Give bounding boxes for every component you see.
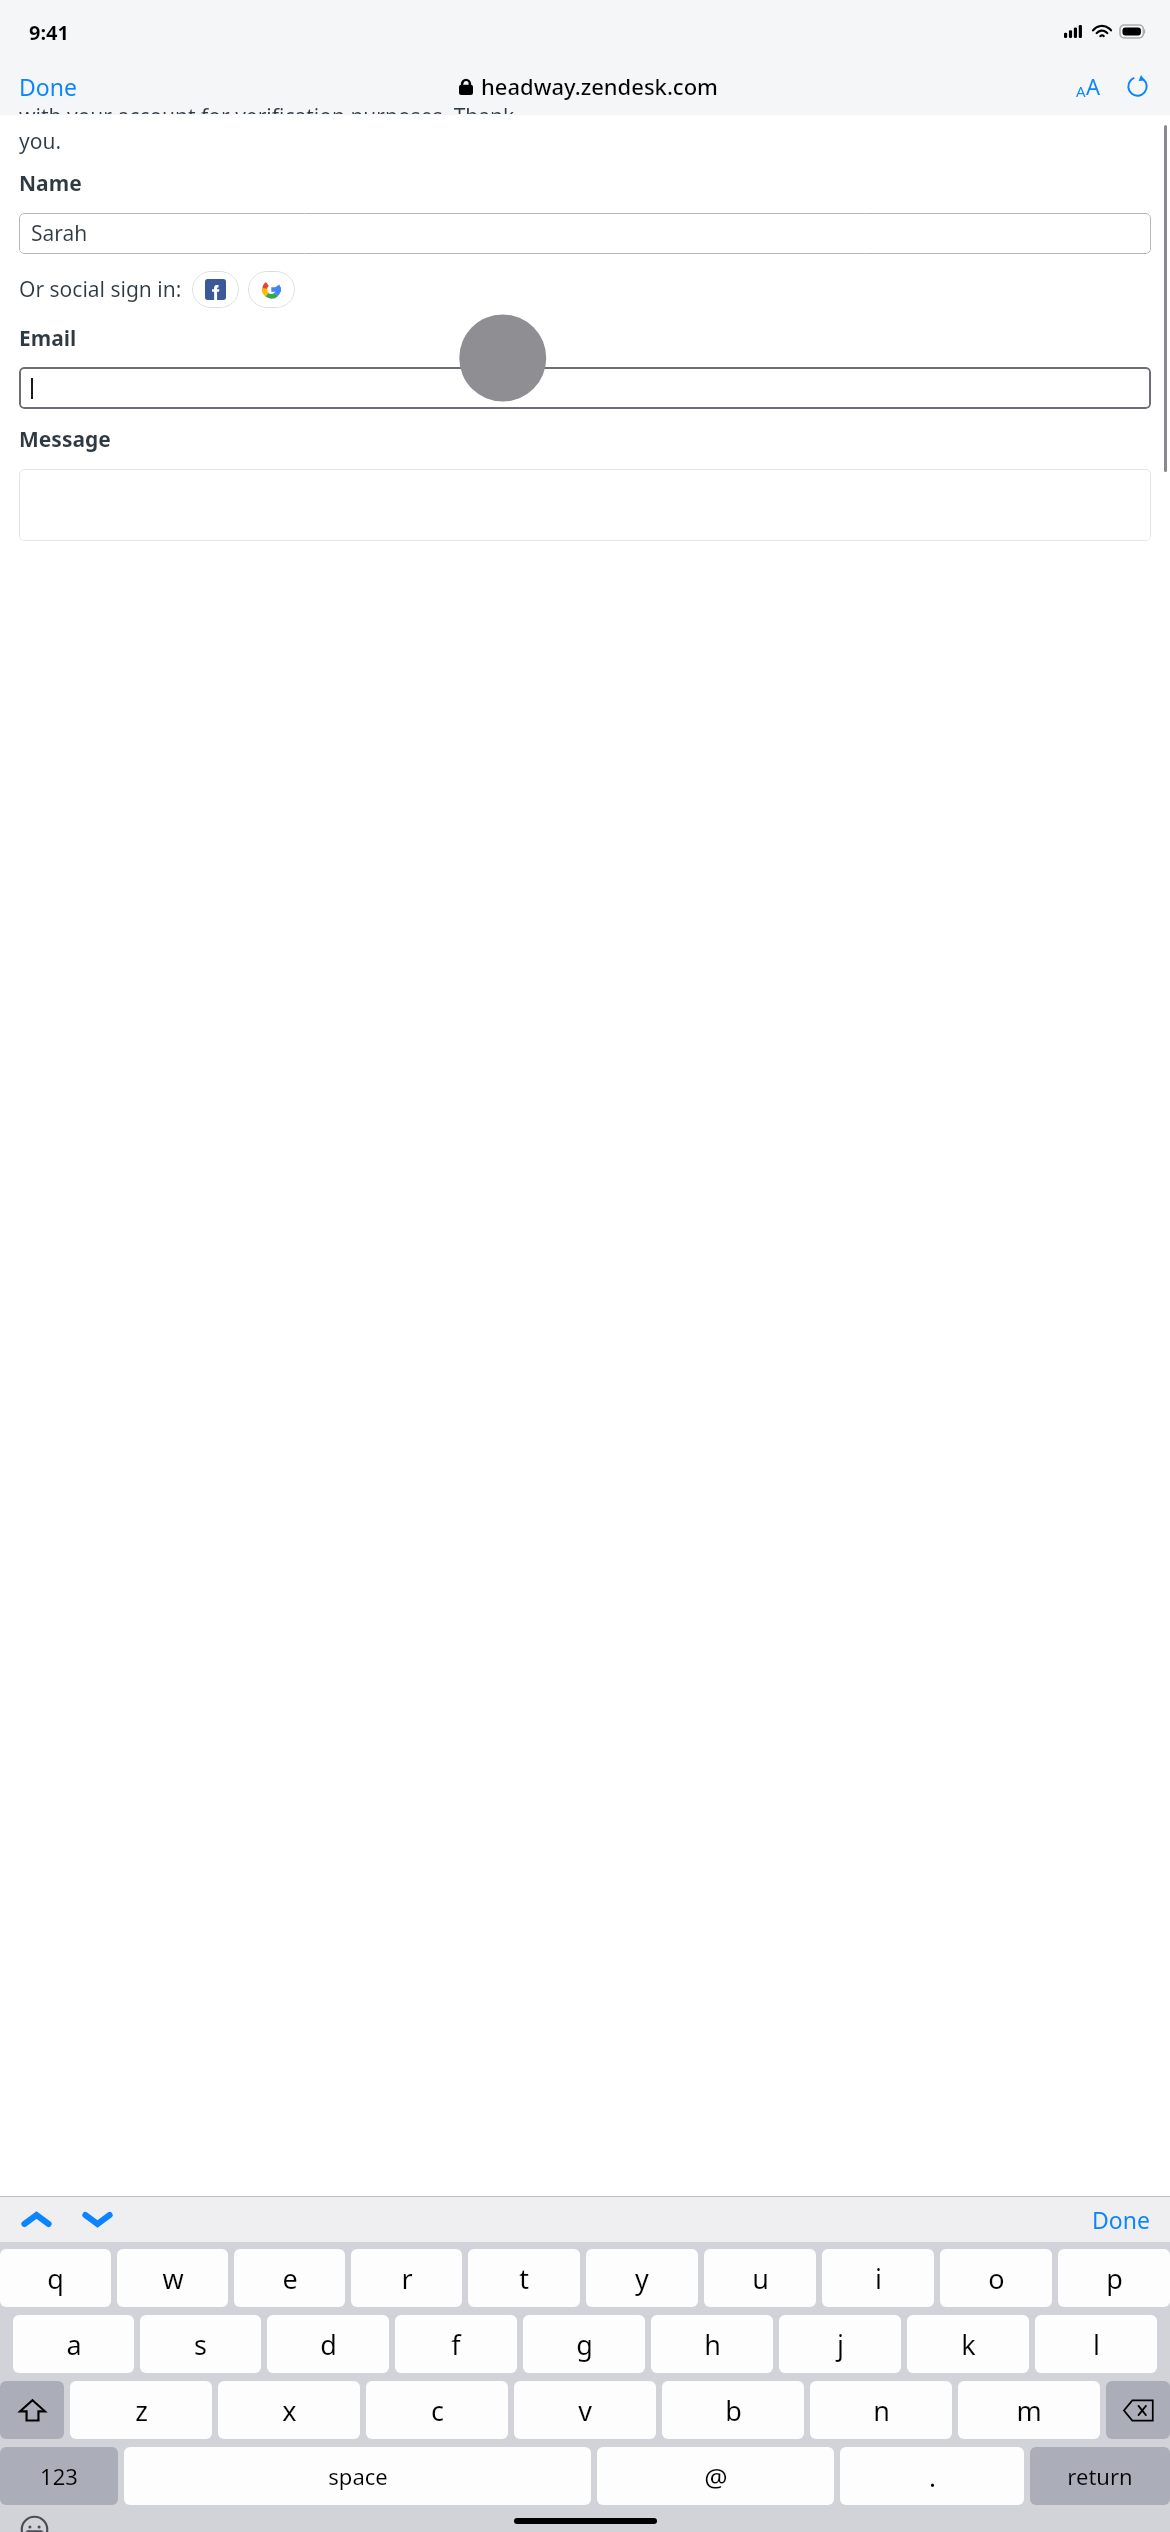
staticText: 123	[40, 2461, 78, 2491]
button[interactable]: Sign in with Google	[248, 271, 295, 308]
button[interactable]: d	[267, 2315, 389, 2373]
button[interactable]: 123	[0, 2447, 118, 2505]
button[interactable]: s	[140, 2315, 261, 2373]
button[interactable]: h	[651, 2315, 773, 2373]
staticText: f	[451, 2326, 461, 2363]
button[interactable]: @	[597, 2447, 834, 2505]
staticText: A	[1076, 81, 1086, 101]
button[interactable]: g	[523, 2315, 645, 2373]
button[interactable]: Next field	[74, 2203, 121, 2236]
button[interactable]: b	[662, 2381, 804, 2439]
staticText: Sarah	[31, 219, 88, 248]
button[interactable]: Emoji keyboard	[16, 2511, 53, 2532]
staticText: with your account for verification purpo…	[19, 102, 515, 114]
button[interactable]: u	[704, 2249, 816, 2307]
button[interactable]: Done	[0, 65, 91, 108]
staticText: y	[635, 2260, 649, 2297]
button[interactable]: a	[13, 2315, 134, 2373]
staticText: w	[162, 2260, 184, 2297]
staticText: e	[282, 2260, 298, 2297]
button[interactable]: Done	[1078, 2198, 1170, 2241]
staticText: o	[988, 2260, 1005, 2297]
button[interactable]: Reload page	[1119, 68, 1156, 105]
staticText: q	[47, 2260, 64, 2297]
staticText: t	[519, 2260, 529, 2297]
staticText: z	[135, 2392, 148, 2429]
button[interactable]: .	[840, 2447, 1024, 2505]
staticText: headway.zendesk.com	[481, 71, 718, 101]
button[interactable]: Previous field	[13, 2203, 60, 2236]
button[interactable]: space	[124, 2447, 591, 2505]
button[interactable]: x	[218, 2381, 360, 2439]
button[interactable]: i	[822, 2249, 934, 2307]
staticText: m	[1016, 2392, 1042, 2429]
staticText: c	[431, 2392, 444, 2429]
button[interactable]: m	[958, 2381, 1100, 2439]
button[interactable]: n	[810, 2381, 952, 2439]
staticText: space	[328, 2461, 388, 2491]
staticText: b	[725, 2392, 742, 2429]
button[interactable]: e	[234, 2249, 345, 2307]
staticText: u	[752, 2260, 769, 2297]
staticText: return	[1067, 2461, 1133, 2491]
button[interactable]: j	[779, 2315, 901, 2373]
staticText: 9:41	[29, 19, 69, 46]
button[interactable]: z	[70, 2381, 212, 2439]
button[interactable]: y	[586, 2249, 698, 2307]
staticText: r	[401, 2260, 413, 2297]
staticText: you.	[19, 127, 62, 156]
button[interactable]: r	[351, 2249, 462, 2307]
button[interactable]: Shift	[0, 2381, 64, 2439]
button[interactable]: l	[1035, 2315, 1157, 2373]
button[interactable]: w	[117, 2249, 228, 2307]
staticText: x	[282, 2392, 297, 2429]
staticText: i	[875, 2260, 882, 2297]
button[interactable]: Text size options	[1070, 63, 1107, 109]
staticText: v	[578, 2392, 592, 2429]
staticText: @	[704, 2459, 728, 2494]
button[interactable]: v	[514, 2381, 656, 2439]
staticText: l	[1093, 2326, 1100, 2363]
staticText: A	[1086, 71, 1101, 101]
staticText: Name	[19, 169, 82, 198]
button[interactable]: q	[0, 2249, 111, 2307]
staticText: p	[1106, 2260, 1123, 2297]
button[interactable]: Sarah	[19, 213, 1151, 254]
staticText: s	[194, 2326, 207, 2363]
button[interactable]: Backspace	[1106, 2381, 1170, 2439]
staticText: n	[873, 2392, 890, 2429]
staticText: k	[961, 2326, 976, 2363]
button[interactable]: Sign in with Facebook	[192, 271, 239, 308]
staticText: j	[837, 2326, 844, 2363]
button[interactable]	[19, 469, 1151, 541]
staticText: a	[66, 2326, 82, 2363]
staticText: Message	[19, 425, 111, 454]
staticText: g	[576, 2326, 593, 2363]
button[interactable]: t	[468, 2249, 580, 2307]
button[interactable]	[19, 367, 1151, 409]
button[interactable]: f	[395, 2315, 517, 2373]
button[interactable]: k	[907, 2315, 1029, 2373]
button[interactable]: return	[1030, 2447, 1170, 2505]
button[interactable]: p	[1058, 2249, 1170, 2307]
staticText: Or social sign in:	[19, 275, 182, 304]
staticText: d	[320, 2326, 337, 2363]
button[interactable]: o	[940, 2249, 1052, 2307]
staticText: Email	[19, 324, 77, 353]
button[interactable]: c	[366, 2381, 508, 2439]
staticText: .	[929, 2459, 936, 2494]
staticText: h	[704, 2326, 721, 2363]
